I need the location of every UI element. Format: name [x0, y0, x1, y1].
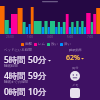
button[interactable]: 睡眠時間: [4, 64, 47, 82]
button[interactable]: 覚醒: [21, 42, 34, 46]
button[interactable]: ベッドにいる時間: [4, 48, 51, 66]
staticText: 気分: [72, 66, 79, 70]
button[interactable]: レム: [34, 42, 47, 46]
staticText: 覚醒: [25, 42, 32, 46]
staticText: 睡眠までの時間: [4, 80, 28, 84]
staticText: 3:00: [47, 35, 53, 39]
staticText: 深い: [64, 42, 71, 46]
staticText: メモ: [72, 83, 79, 87]
button[interactable]: 深い: [60, 42, 73, 46]
staticText: 4時間 59分: [4, 70, 47, 82]
button[interactable]: 睡眠効率: [61, 48, 89, 63]
staticText: 5:00: [67, 35, 73, 39]
staticText: 5時間 50分: [4, 54, 47, 66]
staticText: レム: [38, 42, 45, 46]
staticText: 7:00: [87, 35, 93, 39]
staticText: 0時間 10分: [4, 86, 47, 98]
staticText: 睡眠時間: [4, 64, 18, 68]
staticText: 浅い: [51, 42, 58, 46]
button[interactable]: 睡眠までの時間: [4, 80, 47, 98]
staticText: 23:00: [6, 35, 14, 39]
staticText: 睡眠効率: [69, 48, 82, 52]
staticText: 1:00: [27, 35, 33, 39]
button[interactable]: 浅い: [47, 42, 60, 46]
staticText: ベッドにいる時間: [4, 48, 32, 52]
staticText: 62%: [66, 53, 80, 63]
button[interactable]: Notes: [64, 83, 86, 98]
button[interactable]: Mood: [64, 66, 86, 81]
